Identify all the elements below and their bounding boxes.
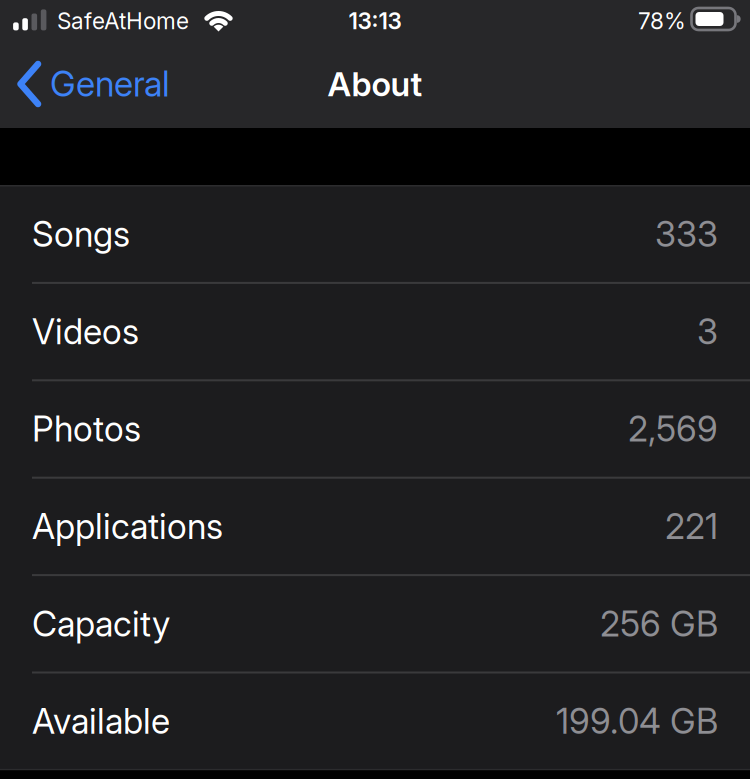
staticText: Capacity [32, 603, 170, 644]
staticText: Videos [32, 311, 139, 352]
staticText: 78% [638, 8, 686, 34]
staticText: 199.04 GB [556, 701, 718, 742]
staticText: 2,569 [628, 409, 718, 449]
staticText: 3 [697, 311, 718, 352]
staticText: 333 [655, 214, 718, 255]
button[interactable]: Back [0, 60, 170, 108]
staticText: About [327, 64, 422, 104]
staticText: 221 [665, 506, 718, 547]
staticText: Applications [32, 506, 223, 547]
staticText: 13:13 [348, 8, 401, 34]
staticText: Photos [32, 409, 141, 449]
staticText: Available [32, 701, 170, 742]
staticText: 256 GB [600, 603, 718, 644]
staticText: Songs [32, 214, 130, 255]
staticText: General [50, 64, 170, 104]
staticText: SafeAtHome [57, 8, 189, 34]
